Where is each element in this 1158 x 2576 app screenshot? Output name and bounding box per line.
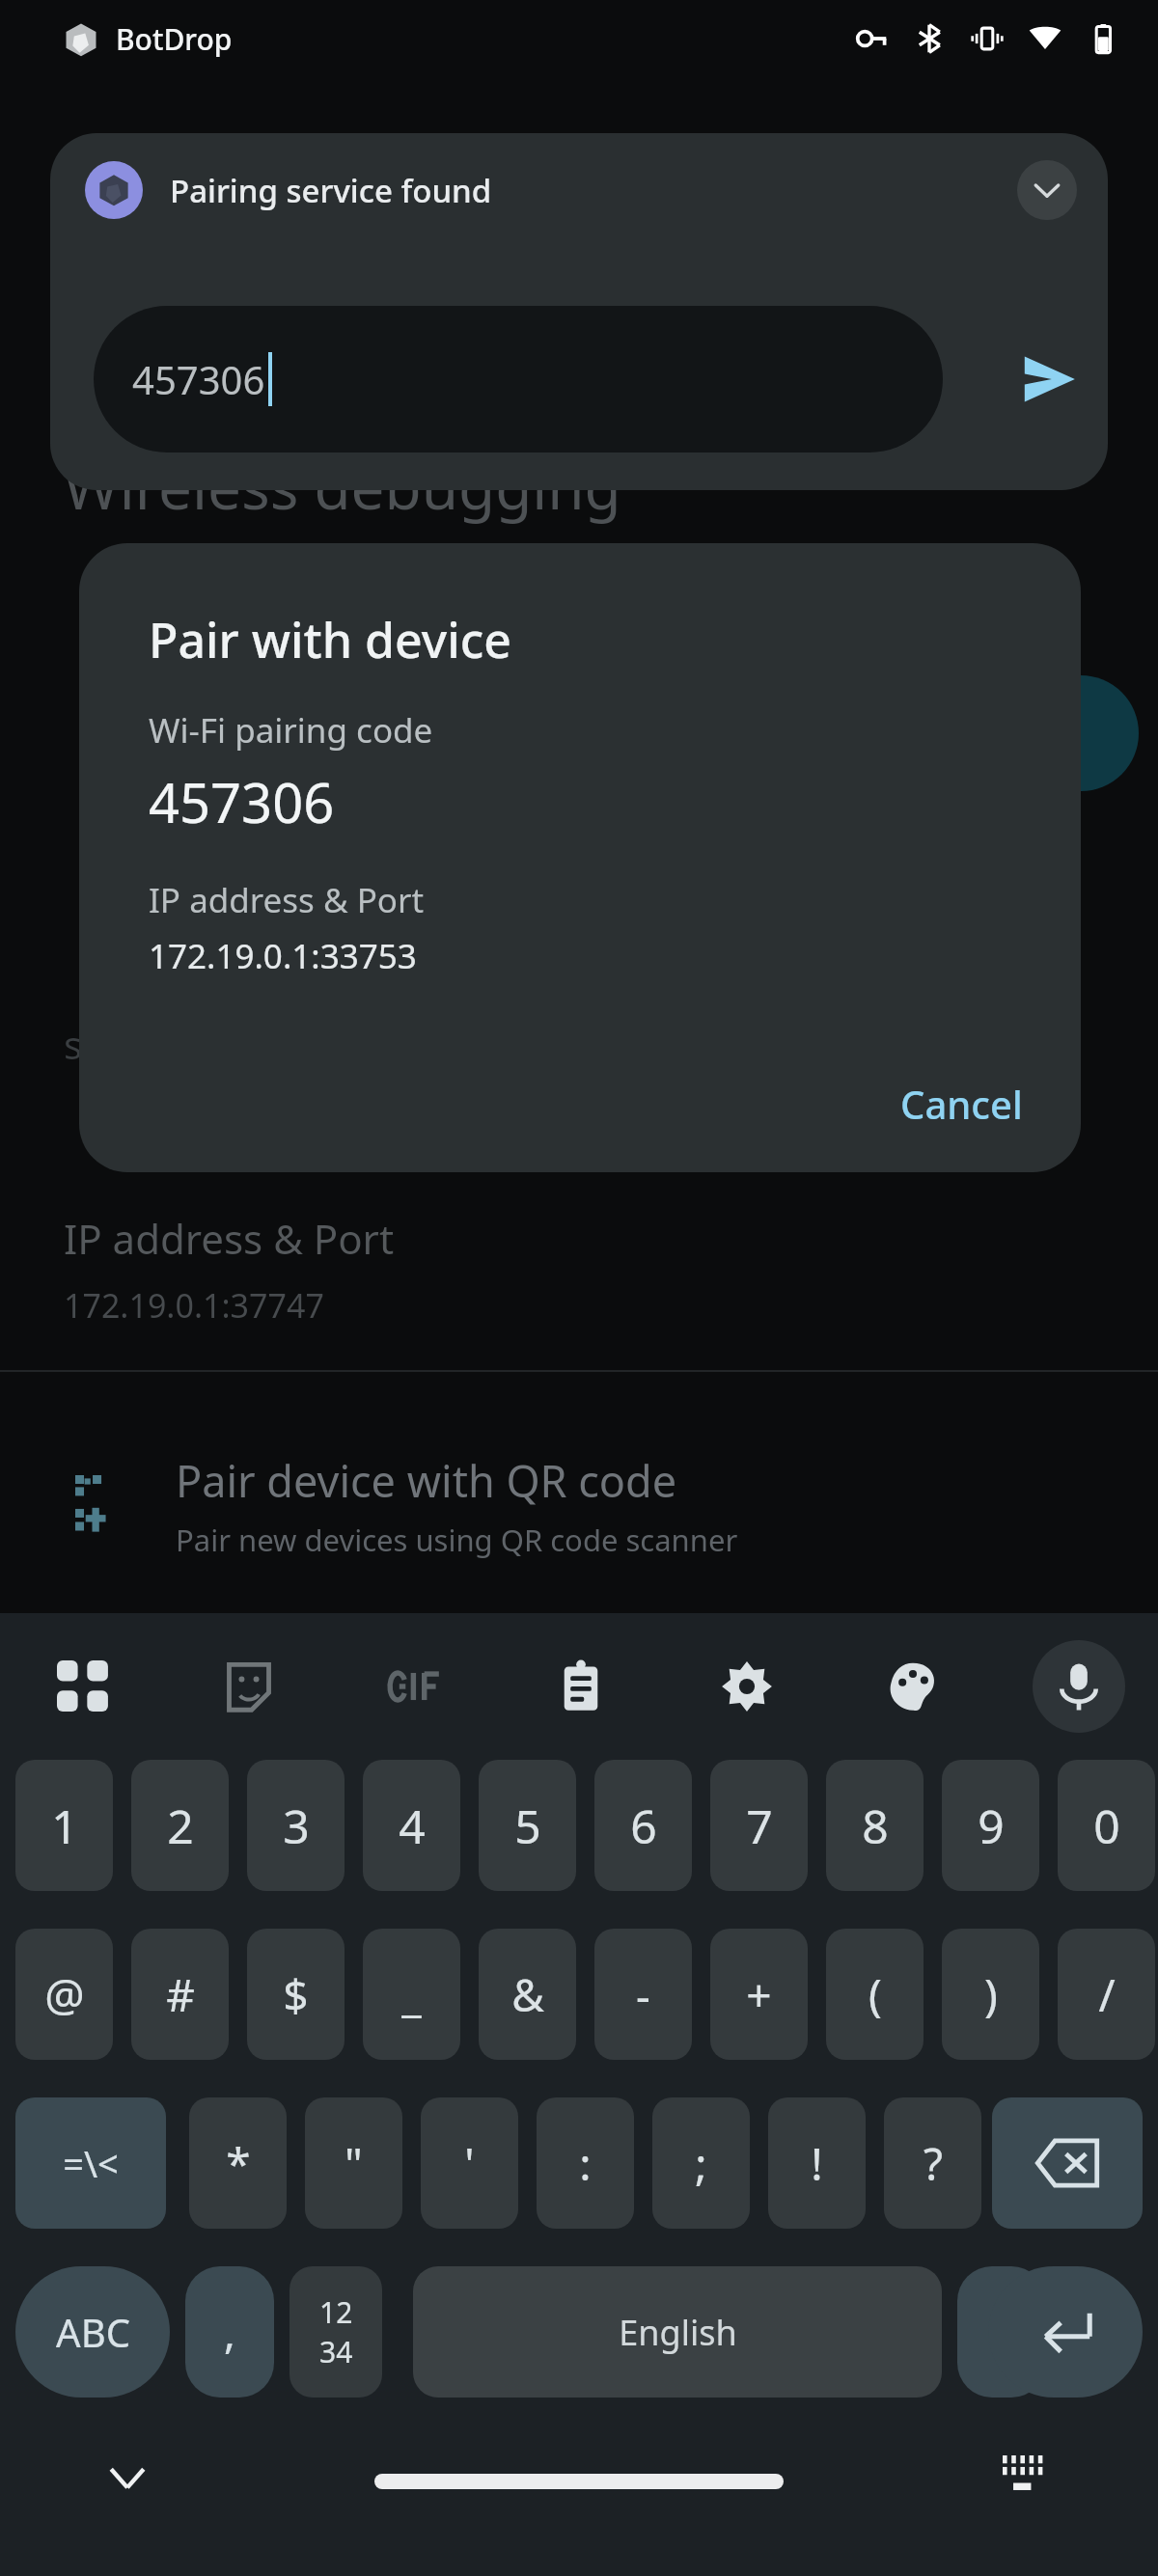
button[interactable]: Numbers	[289, 2266, 382, 2398]
button[interactable]: &	[479, 1929, 576, 2060]
button[interactable]: Voice input	[1033, 1640, 1125, 1733]
staticText: Cancel	[900, 1078, 1023, 1130]
button[interactable]: Cancel	[877, 1062, 1046, 1145]
button[interactable]: "	[305, 2097, 402, 2229]
button[interactable]: 8	[826, 1760, 924, 1891]
staticText: Pair new devices using QR code scanner	[176, 1520, 738, 1560]
staticText: 1	[51, 1795, 78, 1857]
staticText: 172.19.0.1:33753	[149, 933, 417, 979]
button[interactable]: 5	[479, 1760, 576, 1891]
button[interactable]: .	[957, 2266, 1046, 2398]
button[interactable]: Send	[991, 306, 1107, 452]
button[interactable]: ?	[884, 2097, 981, 2229]
button[interactable]: Apps	[37, 1640, 129, 1733]
button[interactable]: _	[363, 1929, 460, 2060]
staticText: (	[868, 1964, 882, 2025]
button[interactable]: Collapse notification	[1017, 160, 1077, 220]
button[interactable]: ,	[185, 2266, 274, 2398]
staticText: '	[464, 2133, 475, 2194]
staticText: "	[345, 2133, 363, 2194]
staticText: Pairing service found	[170, 169, 492, 212]
staticText: 5	[514, 1795, 541, 1857]
staticText: :	[579, 2133, 592, 2194]
staticText: 34	[319, 2332, 353, 2371]
staticText: Pair with device	[149, 607, 511, 672]
staticText: 457306	[149, 765, 335, 838]
staticText: 9	[978, 1795, 1005, 1857]
staticText: /	[1098, 1964, 1116, 2025]
staticText: +	[746, 1964, 772, 2025]
staticText: English	[619, 2309, 737, 2356]
button[interactable]: /	[1058, 1929, 1155, 2060]
button[interactable]: @	[15, 1929, 113, 2060]
button[interactable]: (	[826, 1929, 924, 2060]
staticText: 0	[1093, 1795, 1120, 1857]
staticText: Wireless debugging	[64, 446, 621, 527]
staticText: 6	[630, 1795, 657, 1857]
button[interactable]: English	[413, 2266, 942, 2398]
staticText: =\<	[63, 2138, 119, 2188]
button[interactable]: 4	[363, 1760, 460, 1891]
button[interactable]: Stickers	[203, 1640, 295, 1733]
button[interactable]: 7	[710, 1760, 808, 1891]
button[interactable]: +	[710, 1929, 808, 2060]
staticText: *	[226, 2133, 251, 2194]
staticText: -	[636, 1964, 650, 2025]
staticText: 172.19.0.1:37747	[64, 1283, 324, 1328]
staticText: #	[166, 1964, 195, 2025]
staticText: IP address & Port	[64, 1211, 395, 1266]
button[interactable]: 3	[247, 1760, 345, 1891]
button[interactable]: Enter	[988, 2266, 1143, 2398]
staticText: 8	[862, 1795, 889, 1857]
button[interactable]: ;	[652, 2097, 750, 2229]
button[interactable]: =\<	[15, 2097, 166, 2229]
staticText: 457306	[132, 353, 265, 405]
button[interactable]: 9	[942, 1760, 1039, 1891]
button[interactable]: Change keyboard	[984, 2437, 1065, 2518]
staticText: ,	[224, 2303, 235, 2361]
button[interactable]: 457306	[94, 306, 943, 452]
button[interactable]: #	[131, 1929, 229, 2060]
staticText: 2	[167, 1795, 194, 1857]
button[interactable]: 2	[131, 1760, 229, 1891]
staticText: Pair device with QR code	[176, 1451, 677, 1510]
button[interactable]: '	[421, 2097, 518, 2229]
staticText: 4	[399, 1795, 426, 1857]
button[interactable]: Settings	[701, 1640, 793, 1733]
staticText: )	[984, 1964, 998, 2025]
button[interactable]: Pair device with QR code	[0, 1409, 1158, 1602]
staticText: ;	[695, 2133, 707, 2194]
staticText: @	[44, 1964, 85, 2025]
staticText: _	[401, 1964, 422, 2025]
button[interactable]: )	[942, 1929, 1039, 2060]
button[interactable]: ABC	[15, 2266, 170, 2398]
staticText: $	[283, 1964, 309, 2025]
button[interactable]: :	[537, 2097, 634, 2229]
button[interactable]: 1	[15, 1760, 113, 1891]
staticText: Wi-Fi pairing code	[149, 707, 433, 754]
staticText: 7	[746, 1795, 773, 1857]
staticText: ABC	[56, 2306, 130, 2358]
staticText: &	[511, 1964, 544, 2025]
button[interactable]: Themes	[867, 1640, 959, 1733]
staticText: IP address & Port	[149, 877, 425, 923]
staticText: !	[811, 2133, 823, 2194]
button[interactable]: Clipboard	[535, 1640, 627, 1733]
staticText: 3	[283, 1795, 310, 1857]
staticText: 12	[319, 2292, 353, 2332]
staticText: BotDrop	[116, 19, 233, 59]
button[interactable]: GIF	[369, 1640, 461, 1733]
staticText: s	[64, 1018, 83, 1070]
staticText: ?	[924, 2133, 943, 2194]
button[interactable]: $	[247, 1929, 345, 2060]
button[interactable]: 6	[594, 1760, 692, 1891]
button[interactable]: Pairing service found	[50, 133, 1108, 490]
button[interactable]: *	[189, 2097, 287, 2229]
button[interactable]: Backspace	[992, 2097, 1143, 2229]
button[interactable]: 0	[1058, 1760, 1155, 1891]
button[interactable]: -	[594, 1929, 692, 2060]
button[interactable]: Hide keyboard	[87, 2437, 168, 2518]
button[interactable]: !	[768, 2097, 866, 2229]
